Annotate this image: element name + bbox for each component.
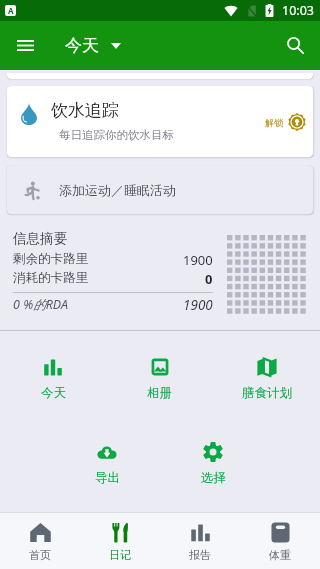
button[interactable]: 今天 [65,21,121,70]
staticText: 剩余的卡路里 [13,251,88,267]
staticText: 日记 [109,548,131,562]
staticText: 膳食计划 [242,385,292,401]
button[interactable]: 报告 [160,513,240,569]
staticText: 信息摘要 [13,230,67,247]
staticText: 相册 [147,385,172,401]
button[interactable]: 相册 [106,357,213,401]
button[interactable]: 选择 [160,442,266,486]
staticText: 0 %的RDA [13,296,68,313]
staticText: 首页 [29,548,51,562]
button[interactable]: 今天 [0,357,106,401]
button[interactable]: 添加运动／睡眠活动 [7,166,313,214]
staticText: 每日追踪你的饮水目标 [59,128,174,142]
staticText: 今天 [41,385,66,401]
staticText: 解锁 [265,117,283,128]
staticText: 消耗的卡路里 [13,270,88,286]
button[interactable]: Search [272,21,320,70]
button[interactable]: 体重 [240,513,320,569]
staticText: 导出 [95,470,120,486]
staticText: 选择 [201,470,226,486]
button[interactable]: Menu [0,21,48,70]
staticText: 0 [205,270,213,288]
staticText: 添加运动／睡眠活动 [59,182,176,198]
staticText: 饮水追踪 [51,100,119,121]
button[interactable]: 导出 [54,442,160,486]
staticText: 1900 [183,251,213,269]
staticText: 体重 [269,548,291,562]
button[interactable]: 饮水追踪 [7,86,313,157]
staticText: 10:03 [282,2,314,19]
button[interactable]: 日记 [80,513,160,569]
staticText: 报告 [189,548,211,562]
button[interactable]: 膳食计划 [213,357,320,401]
staticText: 1900 [183,296,213,314]
staticText: A [8,5,14,16]
staticText: 今天 [65,35,99,56]
button[interactable]: 首页 [0,513,80,569]
